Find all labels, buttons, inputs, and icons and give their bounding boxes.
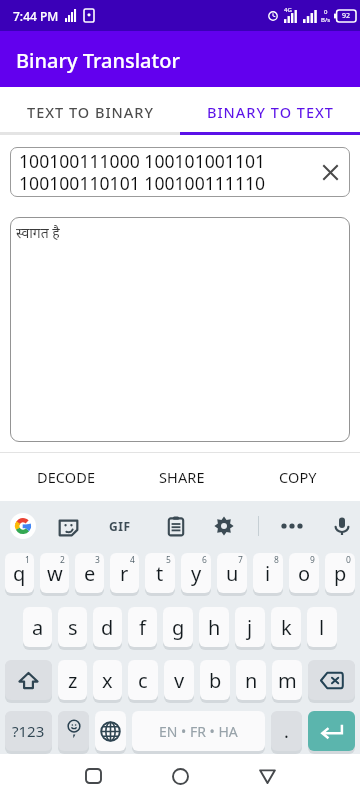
button[interactable]: z — [58, 660, 87, 700]
button[interactable]: t — [145, 553, 175, 593]
staticText: 5 — [166, 554, 171, 566]
staticText: 9 — [310, 554, 315, 566]
staticText: 1 — [25, 554, 30, 566]
button[interactable]: s — [58, 607, 87, 647]
button[interactable]: k — [271, 607, 301, 647]
staticText: 100100111000 100101001101 100100110101 1… — [19, 149, 266, 195]
staticText: 7 — [238, 554, 243, 566]
staticText: 92 — [342, 11, 351, 21]
button[interactable]: u — [217, 553, 247, 593]
staticText: y — [191, 560, 202, 587]
button[interactable]: e — [75, 553, 104, 593]
button[interactable]: p — [325, 553, 355, 593]
staticText: g — [172, 614, 185, 641]
staticText: t — [156, 560, 164, 587]
button[interactable]: Voice input — [329, 513, 355, 539]
button[interactable]: l — [307, 607, 337, 647]
staticText: b — [209, 667, 222, 694]
button[interactable]: GIF — [105, 511, 135, 541]
button[interactable]: स्वागत है — [10, 217, 350, 442]
button[interactable]: More options — [277, 511, 307, 541]
button[interactable]: x — [93, 660, 122, 700]
button[interactable]: v — [164, 660, 194, 700]
staticText: 6 — [202, 554, 207, 566]
staticText: o — [298, 560, 311, 587]
button[interactable]: Home — [160, 756, 200, 796]
staticText: TEXT TO BINARY — [27, 102, 154, 122]
staticText: v — [174, 667, 185, 694]
button[interactable]: o — [289, 553, 319, 593]
button[interactable]: m — [272, 660, 302, 700]
staticText: 0 — [346, 554, 351, 566]
button[interactable]: DECODE — [9, 453, 124, 501]
staticText: GIF — [109, 518, 131, 534]
staticText: DECODE — [37, 467, 96, 487]
button[interactable]: Stickers — [55, 513, 81, 539]
staticText: c — [138, 667, 148, 694]
staticText: Binary Translator — [16, 47, 180, 74]
button[interactable]: f — [128, 607, 157, 647]
button[interactable]: w — [40, 553, 69, 593]
button[interactable]: h — [199, 607, 229, 647]
staticText: l — [319, 614, 325, 641]
staticText: n — [245, 667, 258, 694]
button[interactable]: Settings — [211, 513, 237, 539]
staticText: x — [102, 667, 113, 694]
button[interactable]: n — [236, 660, 266, 700]
staticText: EN • FR • HA — [159, 722, 238, 741]
button[interactable]: . — [271, 711, 302, 751]
button[interactable]: Shift — [5, 660, 52, 700]
staticText: 2 — [60, 554, 65, 566]
staticText: d — [101, 614, 114, 641]
button[interactable]: EN • FR • HA — [132, 711, 265, 751]
button[interactable]: i — [253, 553, 283, 593]
button[interactable]: Recents — [73, 756, 113, 796]
button[interactable]: g — [163, 607, 193, 647]
staticText: BINARY TO TEXT — [207, 102, 334, 122]
staticText: 7:44 PM — [13, 8, 59, 24]
button[interactable]: Backspace — [308, 660, 355, 700]
staticText: m — [278, 667, 297, 694]
button[interactable]: Google search — [10, 513, 36, 539]
staticText: k — [281, 614, 292, 641]
staticText: h — [208, 614, 221, 641]
button[interactable]: Emoji — [58, 711, 89, 751]
staticText: 8 — [274, 554, 279, 566]
staticText: SHARE — [159, 467, 205, 487]
button[interactable]: COPY — [240, 453, 356, 501]
staticText: COPY — [279, 467, 317, 487]
button[interactable]: Clipboard — [163, 513, 189, 539]
staticText: 3 — [95, 554, 100, 566]
button[interactable]: ?123 — [5, 711, 52, 751]
button[interactable]: c — [128, 660, 158, 700]
staticText: i — [265, 560, 271, 587]
button[interactable]: Clear text — [313, 155, 347, 189]
staticText: s — [68, 614, 78, 641]
staticText: e — [84, 560, 96, 587]
button[interactable]: y — [181, 553, 211, 593]
button[interactable]: q — [5, 553, 34, 593]
staticText: j — [247, 614, 253, 641]
button[interactable]: Enter — [308, 711, 355, 751]
button[interactable]: TEXT TO BINARY — [0, 91, 180, 132]
staticText: z — [68, 667, 78, 694]
button[interactable]: Back — [247, 756, 287, 796]
staticText: a — [32, 614, 44, 641]
staticText: r — [120, 560, 129, 587]
staticText: स्वागत है — [16, 223, 60, 242]
staticText: . — [284, 719, 289, 744]
button[interactable]: r — [110, 553, 139, 593]
button[interactable]: BINARY TO TEXT — [180, 91, 360, 132]
button[interactable]: b — [200, 660, 230, 700]
button[interactable]: j — [235, 607, 265, 647]
staticText: 4 — [130, 554, 135, 566]
staticText: q — [13, 560, 26, 587]
button[interactable]: a — [23, 607, 52, 647]
staticText: 4G — [284, 6, 292, 14]
button[interactable]: Change language — [95, 711, 126, 751]
button[interactable]: SHARE — [124, 453, 240, 501]
staticText: B/s — [321, 16, 331, 24]
button[interactable]: d — [93, 607, 122, 647]
staticText: f — [139, 614, 146, 641]
staticText: 0 — [324, 8, 328, 16]
